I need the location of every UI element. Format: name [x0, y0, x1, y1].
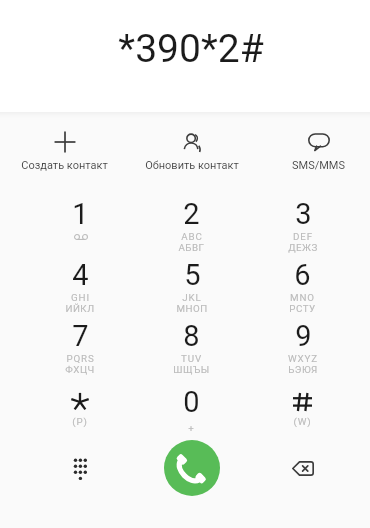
staticText: ЬЭЮЯ	[288, 364, 318, 375]
staticText: Создать контакт	[21, 159, 108, 172]
staticText: 4	[72, 258, 89, 292]
staticText: 6	[294, 258, 311, 292]
staticText: 5	[184, 258, 201, 292]
button[interactable]: Создать контакт	[6, 112, 123, 180]
staticText: ШЩЪЫ	[173, 364, 210, 375]
button[interactable]: Hide keypad	[58, 446, 102, 490]
button[interactable]: 3	[247, 193, 358, 254]
button[interactable]: 1	[24, 193, 136, 254]
staticText: 8	[183, 319, 200, 353]
button[interactable]: 9	[247, 315, 358, 381]
staticText: (P)	[72, 416, 88, 427]
button[interactable]: Backspace	[281, 446, 325, 490]
staticText: SMS/MMS	[292, 159, 345, 172]
button[interactable]: 4	[24, 254, 136, 315]
staticText: +	[188, 423, 195, 434]
staticText: 1	[72, 197, 89, 231]
staticText: 3	[295, 197, 312, 231]
button[interactable]: 5	[136, 254, 247, 315]
staticText: ИЙКЛ	[65, 303, 95, 314]
button[interactable]: 2	[136, 193, 247, 254]
staticText: РСТУ	[289, 303, 316, 314]
button[interactable]: 8	[136, 315, 247, 381]
staticText: GHI	[71, 292, 90, 303]
button[interactable]: 7	[24, 315, 136, 381]
button[interactable]: 0	[136, 381, 247, 442]
staticText: DEF	[293, 231, 313, 242]
staticText: ФХЦЧ	[65, 364, 95, 375]
staticText: (W)	[293, 416, 312, 427]
button[interactable]: Обновить контакт	[133, 112, 250, 180]
staticText: МНОП	[176, 303, 208, 314]
staticText: Обновить контакт	[145, 159, 239, 172]
staticText: 2	[183, 197, 200, 231]
staticText: ABC	[181, 231, 203, 242]
button[interactable]: (P)	[24, 381, 136, 442]
staticText: 0	[183, 385, 200, 419]
staticText: JKL	[182, 292, 202, 303]
staticText: WXYZ	[288, 353, 318, 364]
staticText: MNO	[290, 292, 315, 303]
button[interactable]: (W)	[247, 381, 358, 442]
staticText: ДЕЖЗ	[288, 242, 318, 253]
staticText: АБВГ	[178, 242, 205, 253]
staticText: 9	[295, 319, 312, 353]
button[interactable]: 6	[247, 254, 358, 315]
button[interactable]: Call	[164, 440, 220, 496]
staticText: *390*2#	[118, 26, 264, 72]
staticText: PQRS	[66, 353, 95, 364]
button[interactable]: SMS/MMS	[260, 112, 370, 180]
staticText: 7	[72, 319, 89, 353]
staticText: TUV	[181, 353, 202, 364]
